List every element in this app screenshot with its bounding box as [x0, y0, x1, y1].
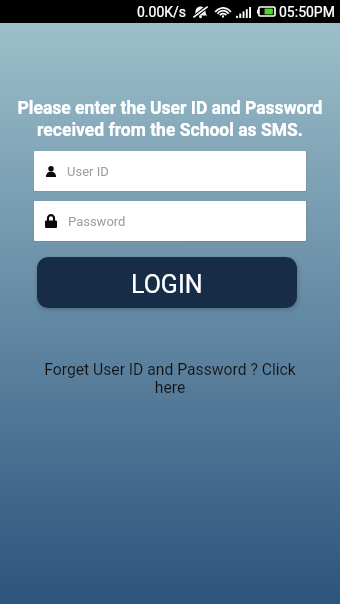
button[interactable]: LOGIN	[37, 257, 297, 308]
staticText: User ID	[67, 164, 109, 179]
staticText: 0.00K/s	[137, 4, 187, 20]
button[interactable]: User ID	[34, 151, 306, 191]
staticText: 05:50PM	[279, 4, 335, 20]
staticText: Password	[68, 214, 126, 229]
button[interactable]: Forget User ID and Password ? Click here	[42, 360, 298, 396]
staticText: LOGIN	[131, 270, 203, 299]
button[interactable]: Password	[34, 201, 306, 241]
staticText: Please enter the User ID and Password re…	[14, 98, 326, 140]
